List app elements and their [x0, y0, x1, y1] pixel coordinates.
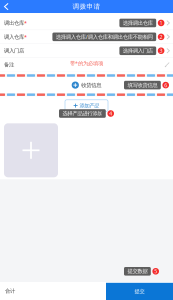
staticText: 4	[109, 110, 112, 117]
staticText: 调出仓库	[4, 20, 24, 26]
button[interactable]: 备注	[0, 58, 173, 71]
button[interactable]: Back	[0, 0, 13, 13]
button[interactable]: 收货信息	[72, 81, 101, 89]
staticText: 调入仓库	[4, 34, 24, 40]
staticText: 选择调入仓库/调入仓库和调出仓库不能相同	[56, 33, 153, 40]
button[interactable]: 调出仓库	[0, 16, 173, 30]
staticText: 6	[164, 82, 167, 89]
staticText: 3	[160, 47, 163, 54]
staticText: 调入门店	[4, 47, 24, 54]
staticText: 提交数据	[127, 268, 147, 275]
staticText: 填写收货信息	[127, 82, 157, 88]
staticText: 1	[160, 19, 163, 26]
staticText: 收货信息	[81, 82, 101, 88]
staticText: 备注	[4, 61, 14, 68]
staticText: 添加产品	[79, 102, 99, 109]
staticText: 调拨申请	[72, 2, 100, 11]
button[interactable]: 提交	[106, 283, 173, 300]
staticText: 提交	[134, 288, 144, 295]
staticText: *	[24, 33, 27, 40]
staticText: 5	[154, 268, 157, 275]
staticText: 选择产品进行添加	[62, 110, 102, 117]
button[interactable]: 调入仓库	[0, 30, 173, 44]
staticText: 2	[160, 33, 163, 40]
staticText: 带*的为必填项	[70, 60, 103, 67]
staticText: *	[24, 19, 27, 26]
staticText: 选择调出仓库	[123, 20, 153, 26]
staticText: 选择调入门店	[123, 47, 153, 54]
button[interactable]: 调入门店	[0, 44, 173, 57]
staticText: 合计	[5, 288, 15, 294]
button[interactable]: 添加产品	[65, 100, 108, 111]
